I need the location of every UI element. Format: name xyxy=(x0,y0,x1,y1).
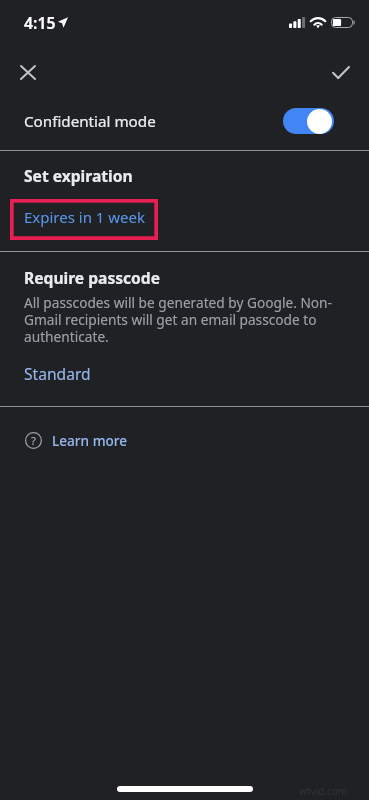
button[interactable]: Confidential mode xyxy=(0,94,369,148)
staticText: 4:15 xyxy=(24,12,56,34)
button[interactable]: Standard xyxy=(16,357,99,390)
staticText: Set expiration xyxy=(24,165,133,186)
staticText: All passcodes will be generated by Googl… xyxy=(24,293,346,346)
staticText: Learn more xyxy=(52,431,128,450)
button[interactable]: Save xyxy=(318,49,364,95)
button[interactable]: ? xyxy=(0,420,369,460)
staticText: Standard xyxy=(24,363,91,384)
button[interactable]: Close xyxy=(5,49,51,95)
staticText: ? xyxy=(31,433,36,448)
staticText: wtvid.com xyxy=(299,784,348,798)
staticText: Confidential mode xyxy=(24,111,156,132)
staticText: Require passcode xyxy=(24,267,161,288)
staticText: Expires in 1 week xyxy=(24,207,146,227)
button[interactable]: Expires in 1 week xyxy=(10,199,158,240)
